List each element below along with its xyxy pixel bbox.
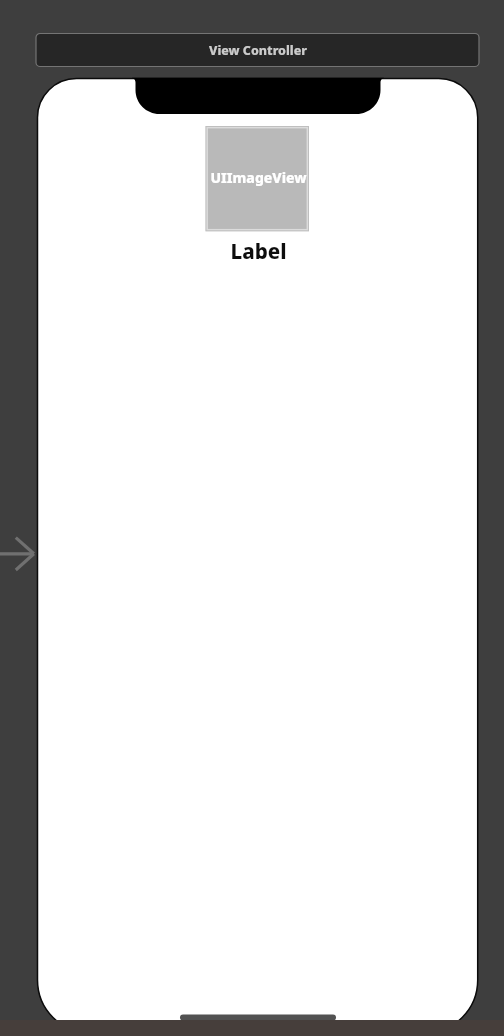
button[interactable]: View Controller — [36, 34, 479, 67]
button[interactable]: UIImageView placeholder — [206, 126, 310, 231]
staticText: Label — [230, 237, 287, 261]
button[interactable]: Label — [206, 237, 310, 261]
staticText: View Controller — [209, 42, 307, 59]
staticText: UIImageView — [210, 168, 307, 187]
